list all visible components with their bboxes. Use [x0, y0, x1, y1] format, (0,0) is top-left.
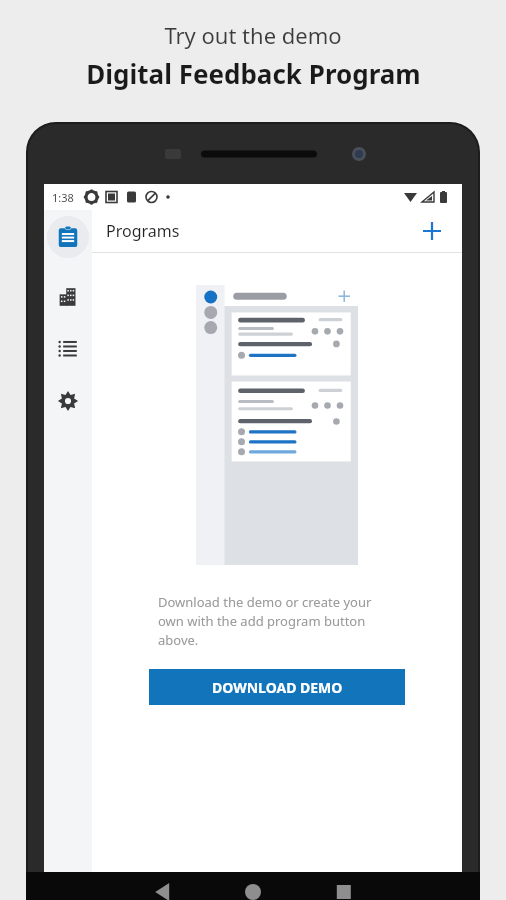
button[interactable]: Settings	[47, 380, 89, 422]
staticText: 1:38	[52, 190, 74, 205]
button[interactable]: List	[47, 328, 89, 370]
staticText: DOWNLOAD DEMO	[212, 678, 343, 697]
staticText: Download the demo or create your own wit…	[158, 593, 396, 649]
button[interactable]: Add program	[416, 215, 448, 247]
button[interactable]: DOWNLOAD DEMO	[149, 669, 405, 705]
staticText: Digital Feedback Program	[86, 56, 421, 91]
staticText: Try out the demo	[164, 20, 342, 50]
staticText: Programs	[106, 220, 180, 242]
button[interactable]: Programs	[47, 216, 89, 258]
button[interactable]: Organizations	[47, 276, 89, 318]
